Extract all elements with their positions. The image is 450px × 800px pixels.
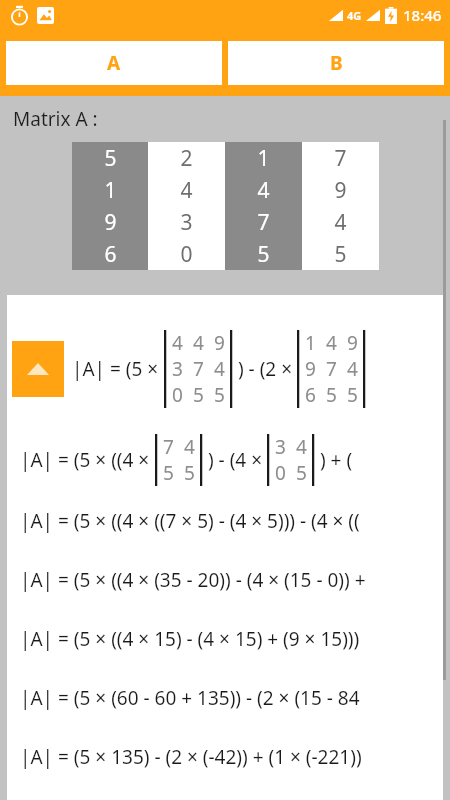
staticText: 4 — [193, 330, 204, 356]
staticText: 6 — [104, 240, 117, 269]
staticText: 4 — [296, 434, 307, 460]
staticText: Matrix A : — [13, 106, 98, 132]
staticText: ) + ( — [315, 447, 353, 473]
button[interactable]: Collapse — [12, 341, 64, 397]
staticText: 5 — [326, 382, 337, 408]
button[interactable]: A — [6, 41, 222, 85]
staticText: 5 — [193, 382, 204, 408]
staticText: 3 — [180, 208, 193, 237]
staticText: 5 — [296, 460, 307, 486]
staticText: 0 — [180, 240, 193, 269]
staticText: 0 — [172, 382, 183, 408]
staticText: 4G — [347, 8, 362, 23]
staticText: 2 — [180, 144, 193, 173]
staticText: 4 — [172, 330, 183, 356]
staticText: 6 — [305, 382, 316, 408]
staticText: 9 — [347, 330, 358, 356]
staticText: 1 — [104, 176, 117, 205]
staticText: 9 — [334, 176, 347, 205]
staticText: |A| = (5 × ((4 × 15) - (4 × 15) + (9 × 1… — [20, 626, 360, 652]
staticText: 7 — [334, 144, 347, 173]
staticText: 4 — [326, 330, 337, 356]
staticText: |A| = (5 × 135) - (2 × (-42)) + (1 × (-2… — [20, 744, 362, 770]
button[interactable]: B — [228, 41, 444, 85]
staticText: |A| = (5 × — [72, 356, 164, 382]
staticText: B — [330, 50, 343, 76]
staticText: 1 — [257, 144, 270, 173]
staticText: |A| = (5 × (60 - 60 + 135)) - (2 × (15 -… — [20, 685, 365, 711]
staticText: 9 — [305, 356, 316, 382]
staticText: ) - (4 × — [203, 447, 267, 473]
staticText: 1 — [305, 330, 316, 356]
staticText: 4 — [214, 356, 225, 382]
staticText: 7 — [193, 356, 204, 382]
staticText: 7 — [326, 356, 337, 382]
staticText: 4 — [184, 434, 195, 460]
staticText: 7 — [163, 434, 174, 460]
staticText: 3 — [172, 356, 183, 382]
staticText: 0 — [275, 460, 286, 486]
staticText: 9 — [104, 208, 117, 237]
staticText: 5 — [334, 240, 347, 269]
staticText: |A| = (5 × ((4 × (35 - 20)) - (4 × (15 -… — [20, 567, 366, 593]
staticText: 4 — [334, 208, 347, 237]
staticText: 5 — [163, 460, 174, 486]
staticText: 5 — [214, 382, 225, 408]
staticText: 5 — [104, 144, 117, 173]
staticText: 5 — [257, 240, 270, 269]
staticText: 7 — [257, 208, 270, 237]
staticText: ) - (2 × — [233, 356, 297, 382]
staticText: 3 — [275, 434, 286, 460]
staticText: |A| = (5 × ((4 × — [20, 447, 155, 473]
staticText: 9 — [214, 330, 225, 356]
staticText: 18:46 — [403, 5, 442, 25]
staticText: 4 — [180, 176, 193, 205]
staticText: |A| = (5 × ((4 × ((7 × 5) - (4 × 5))) - … — [20, 508, 360, 534]
staticText: A — [107, 50, 121, 76]
staticText: 4 — [257, 176, 270, 205]
staticText: 4 — [347, 356, 358, 382]
staticText: 5 — [347, 382, 358, 408]
staticText: 5 — [184, 460, 195, 486]
